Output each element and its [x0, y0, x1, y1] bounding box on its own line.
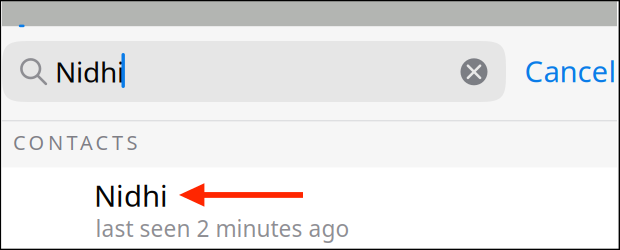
- staticText: last seen 2 minutes ago: [95, 213, 349, 243]
- button[interactable]: Nidhi: [2, 41, 506, 102]
- button[interactable]: Clear text: [460, 58, 487, 85]
- button[interactable]: Cancel: [524, 51, 616, 90]
- staticText: Nidhi: [94, 176, 168, 215]
- staticText: Nidhi: [55, 53, 124, 90]
- staticText: CONTACTS: [13, 129, 137, 156]
- button[interactable]: Nidhi: [2, 167, 617, 248]
- staticText: Cancel: [524, 51, 616, 90]
